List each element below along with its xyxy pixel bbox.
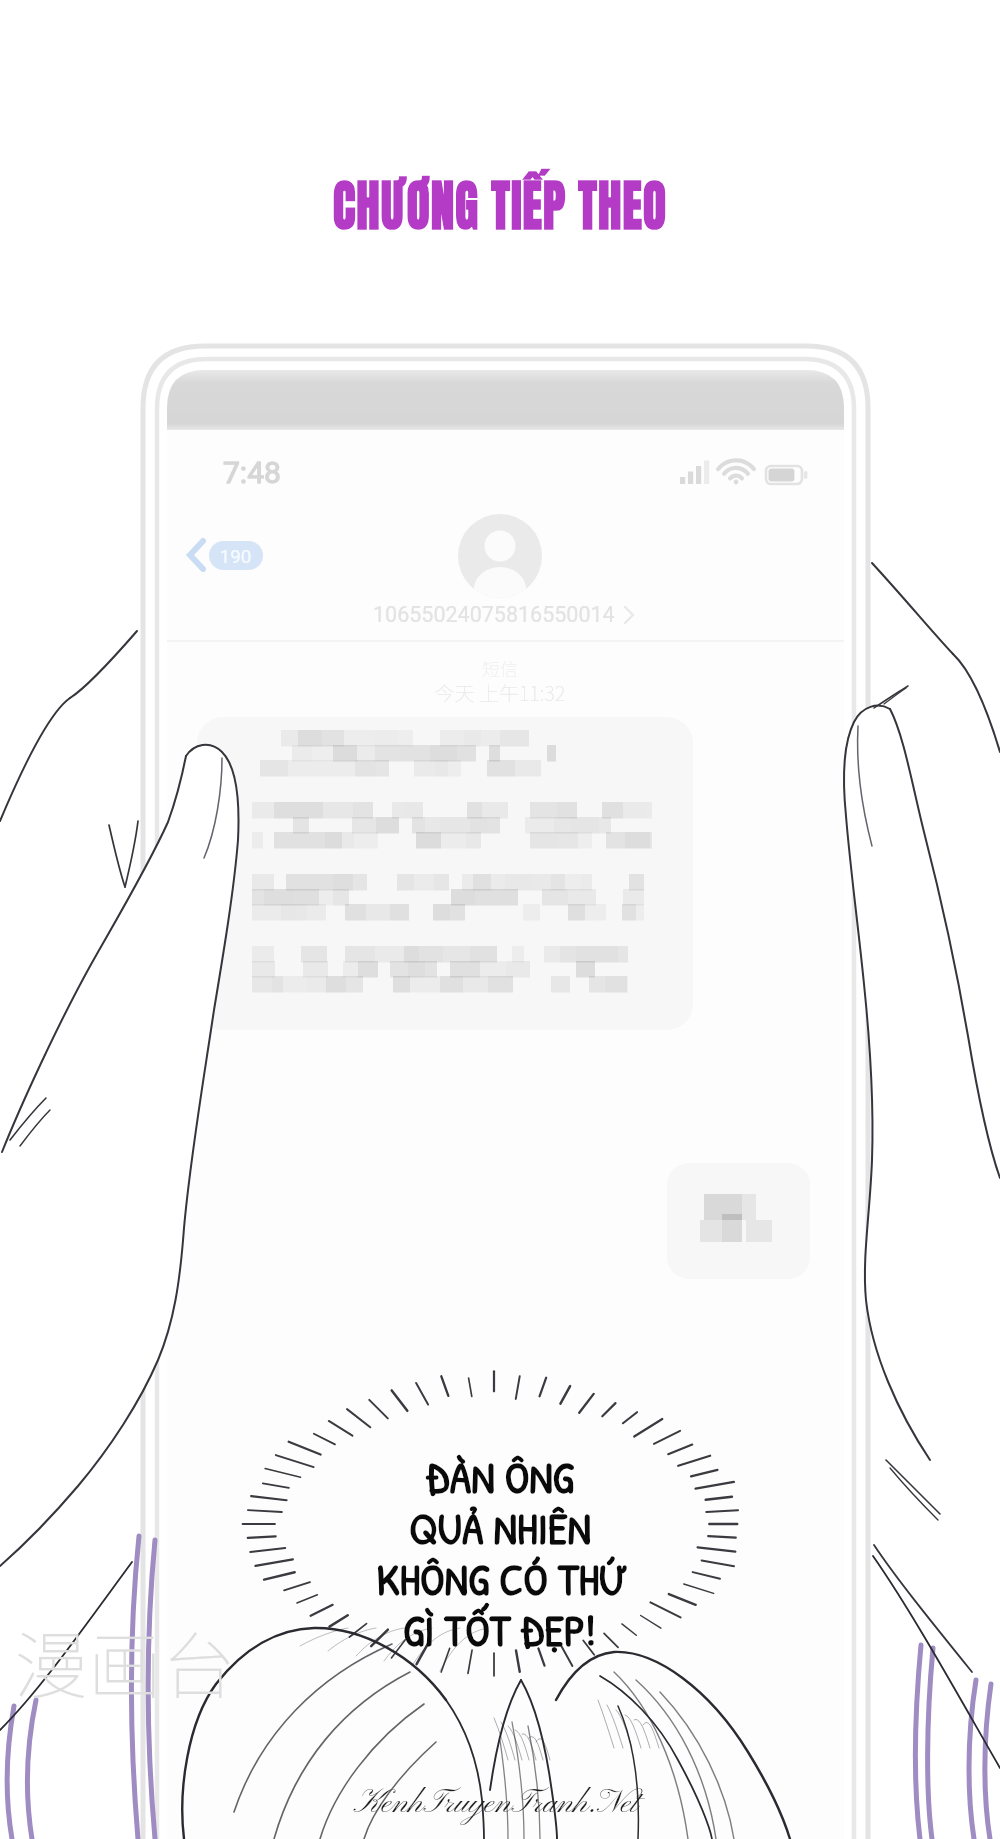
- button[interactable]: Comic page: [0, 0, 1000, 1839]
